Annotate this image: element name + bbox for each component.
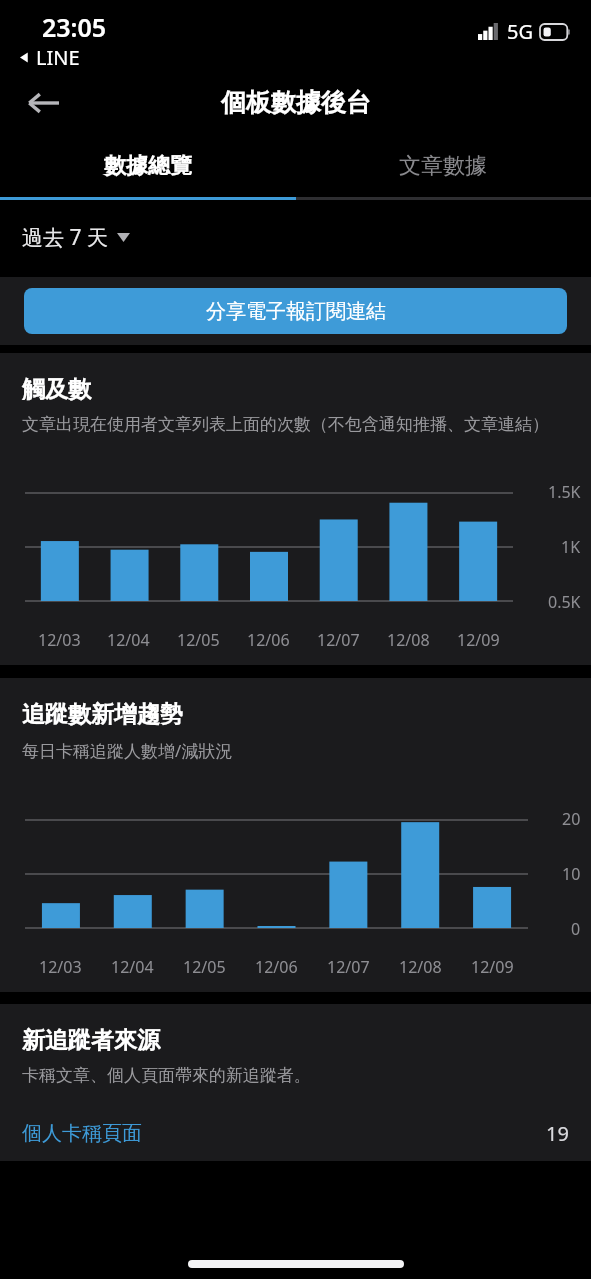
- staticText: 12/03: [39, 956, 82, 978]
- staticText: 卡稱文章、個人頁面帶來的新追蹤者。: [22, 1065, 311, 1086]
- staticText: 12/03: [38, 629, 81, 651]
- button[interactable]: Back: [12, 72, 74, 134]
- staticText: 5G: [507, 18, 533, 45]
- staticText: 0.5K: [548, 591, 581, 613]
- staticText: 新追蹤者來源: [22, 1026, 160, 1055]
- staticText: 個人卡稱頁面: [22, 1121, 142, 1146]
- staticText: 10: [562, 863, 581, 885]
- button[interactable]: 個人卡稱頁面: [0, 1120, 591, 1161]
- staticText: 12/05: [177, 629, 220, 651]
- staticText: 個板數據後台: [221, 87, 371, 118]
- staticText: 分享電子報訂閱連結: [206, 299, 386, 324]
- staticText: 12/06: [255, 956, 298, 978]
- staticText: 12/04: [111, 956, 154, 978]
- staticText: 12/05: [183, 956, 226, 978]
- staticText: 12/07: [327, 956, 370, 978]
- button[interactable]: 分享電子報訂閱連結: [24, 288, 567, 334]
- staticText: 追蹤數新增趨勢: [22, 700, 183, 729]
- button[interactable]: 過去 7 天: [22, 217, 140, 258]
- staticText: LINE: [36, 44, 80, 71]
- staticText: 12/09: [457, 629, 500, 651]
- staticText: 12/08: [399, 956, 442, 978]
- staticText: 20: [562, 808, 581, 830]
- staticText: 觸及數: [22, 375, 91, 404]
- staticText: 過去 7 天: [22, 223, 108, 252]
- staticText: 0: [571, 918, 581, 940]
- staticText: 文章數據: [399, 152, 487, 180]
- staticText: 12/08: [387, 629, 430, 651]
- staticText: 19: [546, 1120, 569, 1147]
- staticText: 數據總覽: [104, 152, 192, 180]
- staticText: 1.5K: [548, 481, 581, 503]
- staticText: 每日卡稱追蹤人數增/減狀況: [22, 739, 233, 762]
- staticText: 12/09: [471, 956, 514, 978]
- staticText: 23:05: [42, 10, 107, 44]
- staticText: 1K: [561, 536, 581, 558]
- staticText: 12/06: [247, 629, 290, 651]
- button[interactable]: 數據總覽: [0, 135, 295, 197]
- button[interactable]: 文章數據: [295, 135, 591, 197]
- staticText: 12/04: [107, 629, 150, 651]
- staticText: 文章出現在使用者文章列表上面的次數（不包含通知推播、文章連結）: [22, 414, 549, 435]
- staticText: 12/07: [317, 629, 360, 651]
